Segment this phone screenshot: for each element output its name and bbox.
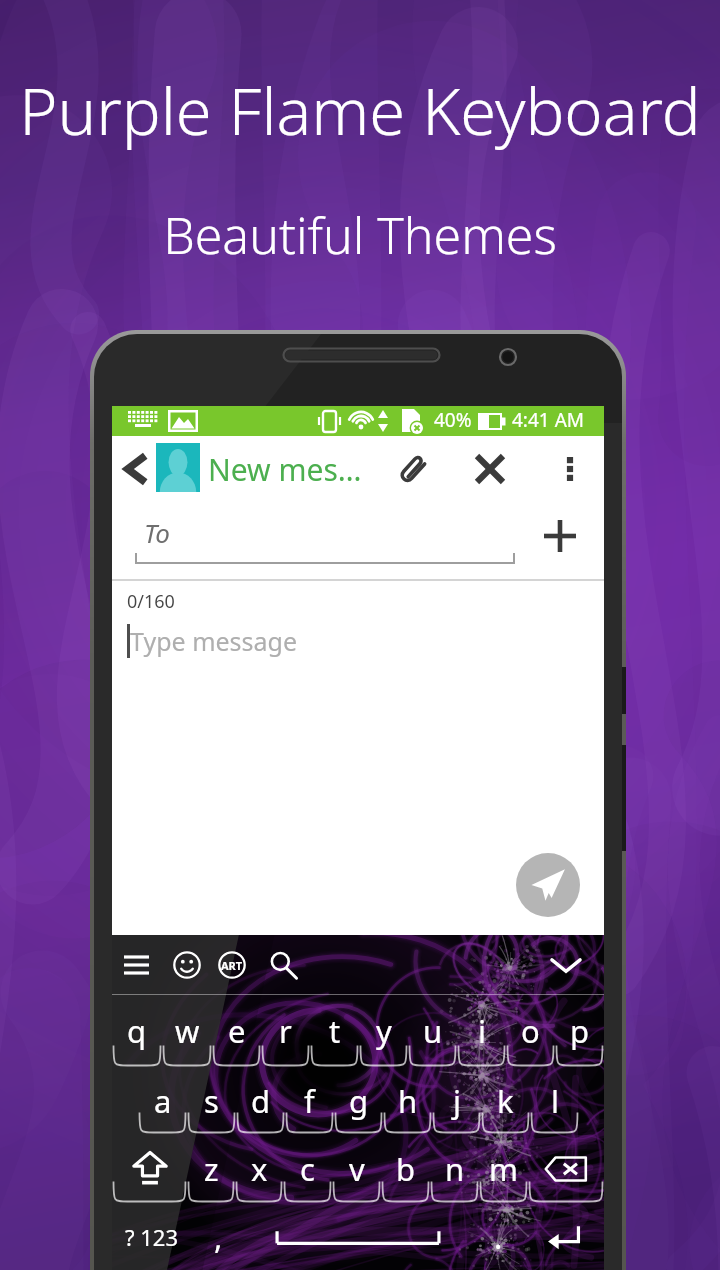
button[interactable]: Emoji <box>165 935 209 995</box>
button[interactable]: c <box>283 1134 332 1203</box>
staticText: Purple Flame Keyboard <box>0 66 720 155</box>
button[interactable]: Search <box>261 935 305 995</box>
button[interactable]: e <box>212 995 261 1067</box>
staticText: t <box>329 1010 341 1052</box>
staticText: l <box>551 1080 559 1122</box>
button[interactable]: i <box>457 995 506 1067</box>
button[interactable]: Attach file <box>391 436 435 501</box>
staticText: k <box>497 1080 514 1122</box>
button[interactable]: Art <box>210 935 254 995</box>
button[interactable]: v <box>332 1134 381 1203</box>
button[interactable] <box>112 1134 187 1203</box>
button[interactable]: s <box>187 1067 236 1134</box>
button[interactable]: n <box>430 1134 479 1203</box>
staticText: s <box>204 1080 219 1122</box>
button[interactable]: b <box>381 1134 430 1203</box>
staticText: 4:41 AM <box>512 407 585 433</box>
button[interactable]: d <box>236 1067 285 1134</box>
staticText: u <box>423 1010 443 1052</box>
button[interactable]: Send <box>516 853 580 917</box>
staticText: n <box>445 1148 465 1190</box>
staticText: y <box>376 1010 392 1052</box>
button[interactable]: o <box>506 995 555 1067</box>
button[interactable]: f <box>285 1067 334 1134</box>
button[interactable]: r <box>261 995 310 1067</box>
staticText: ART <box>221 958 243 973</box>
staticText: z <box>204 1148 219 1190</box>
button[interactable]: j <box>432 1067 481 1134</box>
staticText: Beautiful Themes <box>0 201 720 269</box>
staticText: x <box>251 1148 268 1190</box>
staticText: New mes… <box>208 449 362 490</box>
staticText: 40% <box>434 407 472 433</box>
button[interactable]: w <box>162 995 212 1067</box>
button[interactable]: Contact avatar <box>156 443 200 492</box>
staticText: v <box>349 1148 365 1190</box>
button[interactable] <box>244 1203 472 1270</box>
button[interactable]: z <box>187 1134 235 1203</box>
staticText: q <box>127 1010 147 1052</box>
staticText: Type message <box>130 624 298 658</box>
button[interactable]: x <box>235 1134 283 1203</box>
staticText: h <box>398 1080 418 1122</box>
button[interactable]: u <box>408 995 457 1067</box>
staticText: p <box>570 1010 590 1052</box>
button[interactable]: l <box>530 1067 579 1134</box>
staticText: r <box>279 1010 292 1052</box>
button[interactable] <box>524 1203 604 1270</box>
staticText: b <box>396 1148 416 1190</box>
button[interactable]: More options <box>548 438 592 500</box>
staticText: , <box>214 1216 223 1258</box>
button[interactable]: h <box>383 1067 432 1134</box>
staticText: c <box>300 1148 315 1190</box>
button[interactable]: . <box>472 1203 524 1270</box>
staticText: 0/160 <box>127 589 175 614</box>
button[interactable]: m <box>479 1134 528 1203</box>
button[interactable]: p <box>555 995 604 1067</box>
staticText: ? 123 <box>125 1222 179 1252</box>
staticText: e <box>228 1010 246 1052</box>
staticText: g <box>349 1080 369 1122</box>
button[interactable]: q <box>112 995 162 1067</box>
button[interactable]: y <box>359 995 408 1067</box>
staticText: . <box>494 1216 503 1258</box>
button[interactable]: Menu <box>114 935 158 995</box>
button[interactable]: ? 123 <box>112 1203 192 1270</box>
button[interactable]: Back <box>116 436 156 501</box>
staticText: j <box>453 1080 461 1122</box>
button[interactable]: t <box>310 995 359 1067</box>
staticText: f <box>304 1080 315 1122</box>
staticText: a <box>154 1080 172 1122</box>
staticText: w <box>175 1010 200 1052</box>
button[interactable]: a <box>138 1067 187 1134</box>
button[interactable]: Add recipient <box>536 512 584 560</box>
staticText: m <box>489 1148 518 1190</box>
button[interactable]: Hide keyboard <box>542 941 590 989</box>
button[interactable]: k <box>481 1067 530 1134</box>
staticText: i <box>478 1010 486 1052</box>
button[interactable]: g <box>334 1067 383 1134</box>
button[interactable]: , <box>192 1203 244 1270</box>
button[interactable] <box>528 1134 604 1203</box>
button[interactable]: Close <box>468 436 512 501</box>
staticText: d <box>251 1080 271 1122</box>
staticText: To <box>144 515 170 550</box>
staticText: o <box>521 1010 540 1052</box>
